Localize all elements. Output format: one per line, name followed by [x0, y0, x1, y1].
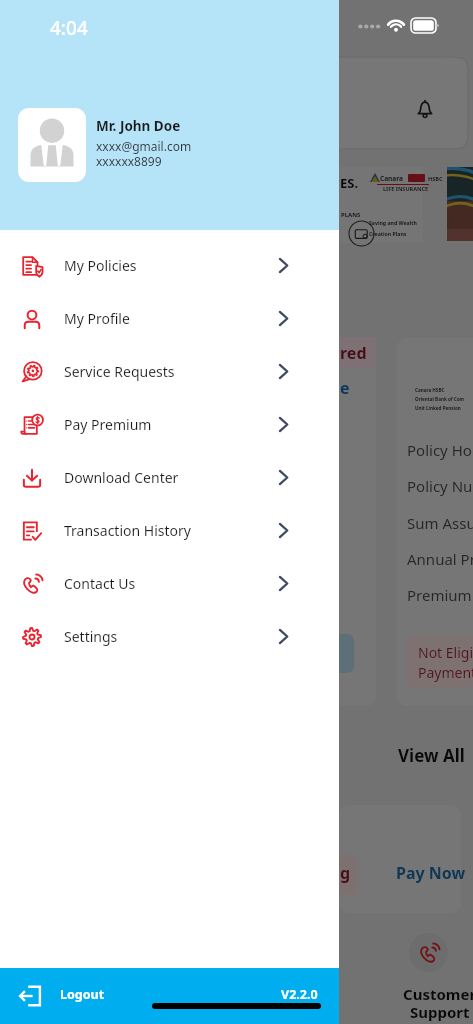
staticText: Customer — [403, 984, 473, 1004]
button[interactable]: Pay Premium — [0, 398, 339, 451]
staticText: 4:04 — [50, 15, 88, 41]
staticText: PLANS — [341, 211, 361, 219]
staticText: Service Requests — [64, 362, 175, 381]
staticText: Canara — [380, 174, 403, 183]
staticText: xxxxxx8899 — [96, 153, 162, 169]
button[interactable]: Service Requests — [0, 345, 339, 398]
button[interactable]: Download Center — [0, 451, 339, 504]
staticText: xxxx@gmail.com — [96, 138, 192, 154]
staticText: red — [340, 342, 367, 364]
staticText: LIFE INSURANCE — [383, 185, 429, 192]
staticText: My Policies — [64, 256, 137, 275]
button[interactable]: My Policies — [0, 239, 339, 292]
staticText: Contact Us — [64, 574, 136, 593]
staticText: ES. — [340, 174, 359, 192]
button[interactable]: Transaction History — [0, 504, 339, 557]
staticText: V2.2.0 — [281, 986, 318, 1003]
staticText: Settings — [64, 627, 118, 646]
staticText: Support — [410, 1002, 470, 1022]
staticText: View All — [398, 744, 465, 767]
staticText: Pay Premium — [64, 415, 152, 434]
staticText: g — [340, 862, 351, 884]
staticText: Logout — [60, 986, 105, 1003]
staticText: Mr. John Doe — [96, 117, 181, 135]
button[interactable]: Logout — [0, 968, 339, 1024]
staticText: Not Eligibl Payment — [418, 643, 473, 682]
staticText: Canara HSBC Oriental Bank of Com Unit Li… — [415, 387, 465, 411]
staticText: Policy Num — [407, 476, 473, 496]
staticText: Download Center — [64, 468, 179, 487]
staticText: e — [340, 377, 350, 399]
staticText: Premium D — [407, 585, 473, 605]
staticText: HSBC — [428, 175, 443, 182]
staticText: Transaction History — [64, 521, 191, 540]
staticText: Saving and Wealth Creation Plans — [369, 219, 417, 237]
button[interactable]: Contact Us — [0, 557, 339, 610]
other: Logout — [19, 985, 41, 1002]
staticText: Policy Hold — [407, 440, 473, 460]
staticText: Pay Now — [396, 862, 466, 884]
staticText: My Profile — [64, 309, 130, 328]
staticText: Annual Pre — [407, 549, 473, 569]
button[interactable]: My Profile — [0, 292, 339, 345]
staticText: Sum Assure — [407, 513, 473, 533]
button[interactable]: Settings — [0, 610, 339, 663]
